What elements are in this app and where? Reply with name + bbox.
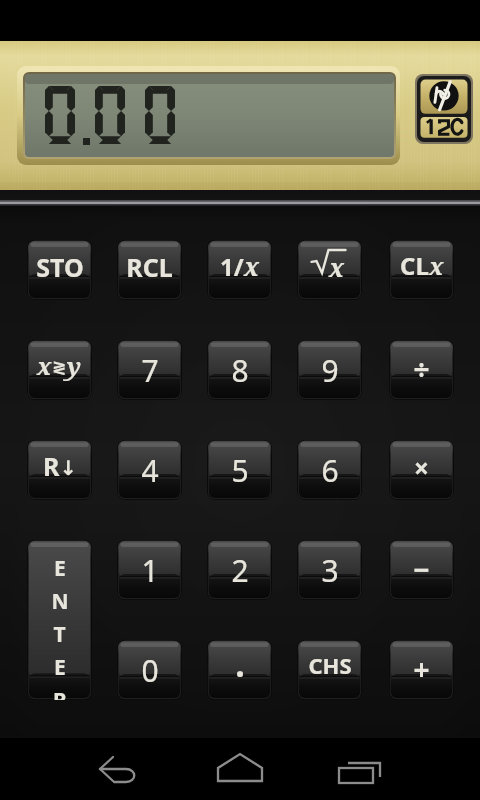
staticText: 9 [321, 350, 339, 391]
staticText: 5 [231, 450, 249, 491]
button[interactable]: Home [180, 738, 300, 800]
staticText: ÷ [413, 350, 430, 388]
staticText: ↓ [60, 456, 77, 479]
staticText: y [67, 349, 82, 382]
staticText: 2 [231, 550, 249, 591]
button[interactable]: CL [389, 240, 454, 300]
button[interactable]: Back [60, 738, 180, 800]
button[interactable]: E [27, 540, 92, 700]
button[interactable]: STO [27, 240, 92, 300]
staticText: T [53, 620, 66, 649]
staticText: N [51, 587, 69, 616]
staticText: 4 [141, 450, 159, 491]
button[interactable]: 7 [117, 340, 182, 400]
button[interactable]: 1/ [207, 240, 272, 300]
staticText: R [53, 686, 67, 700]
staticText: x [429, 249, 444, 282]
button[interactable]: x [27, 340, 92, 400]
button[interactable]: 1 [117, 540, 182, 600]
button[interactable]: 5 [207, 440, 272, 500]
staticText: x [37, 349, 52, 382]
staticText: x [329, 250, 345, 284]
staticText: 1/ [220, 250, 244, 283]
staticText: × [414, 450, 429, 485]
staticText: STO [36, 250, 84, 284]
staticText: 0 [141, 650, 159, 691]
staticText: CHS [308, 650, 352, 680]
button[interactable]: CHS [297, 640, 362, 700]
staticText: 6 [321, 450, 339, 491]
staticText: − [413, 550, 430, 588]
staticText: + [413, 650, 430, 688]
staticText: E [54, 653, 66, 682]
button[interactable]: − [389, 540, 454, 600]
button[interactable]: ÷ [389, 340, 454, 400]
staticText: 3 [321, 550, 339, 591]
button[interactable]: 9 [297, 340, 362, 400]
button[interactable]: R [27, 440, 92, 500]
button[interactable]: × [389, 440, 454, 500]
button[interactable]: x [297, 240, 362, 300]
button[interactable]: 6 [297, 440, 362, 500]
button[interactable]: · [207, 640, 272, 700]
staticText: CL [400, 249, 429, 282]
staticText: ≷ [52, 357, 67, 377]
button[interactable]: Recent apps [300, 738, 420, 800]
button[interactable]: 0 [117, 640, 182, 700]
staticText: 1 [141, 550, 159, 591]
staticText: x [244, 249, 260, 283]
button[interactable]: 3 [297, 540, 362, 600]
button[interactable]: 4 [117, 440, 182, 500]
staticText: E [54, 554, 66, 583]
staticText: 8 [231, 350, 249, 391]
staticText: R [43, 449, 60, 483]
staticText: 7 [141, 350, 159, 391]
button[interactable]: 8 [207, 340, 272, 400]
button[interactable]: + [389, 640, 454, 700]
staticText: · [235, 650, 245, 696]
button[interactable]: RCL [117, 240, 182, 300]
staticText: RCL [126, 250, 173, 284]
button[interactable]: 2 [207, 540, 272, 600]
